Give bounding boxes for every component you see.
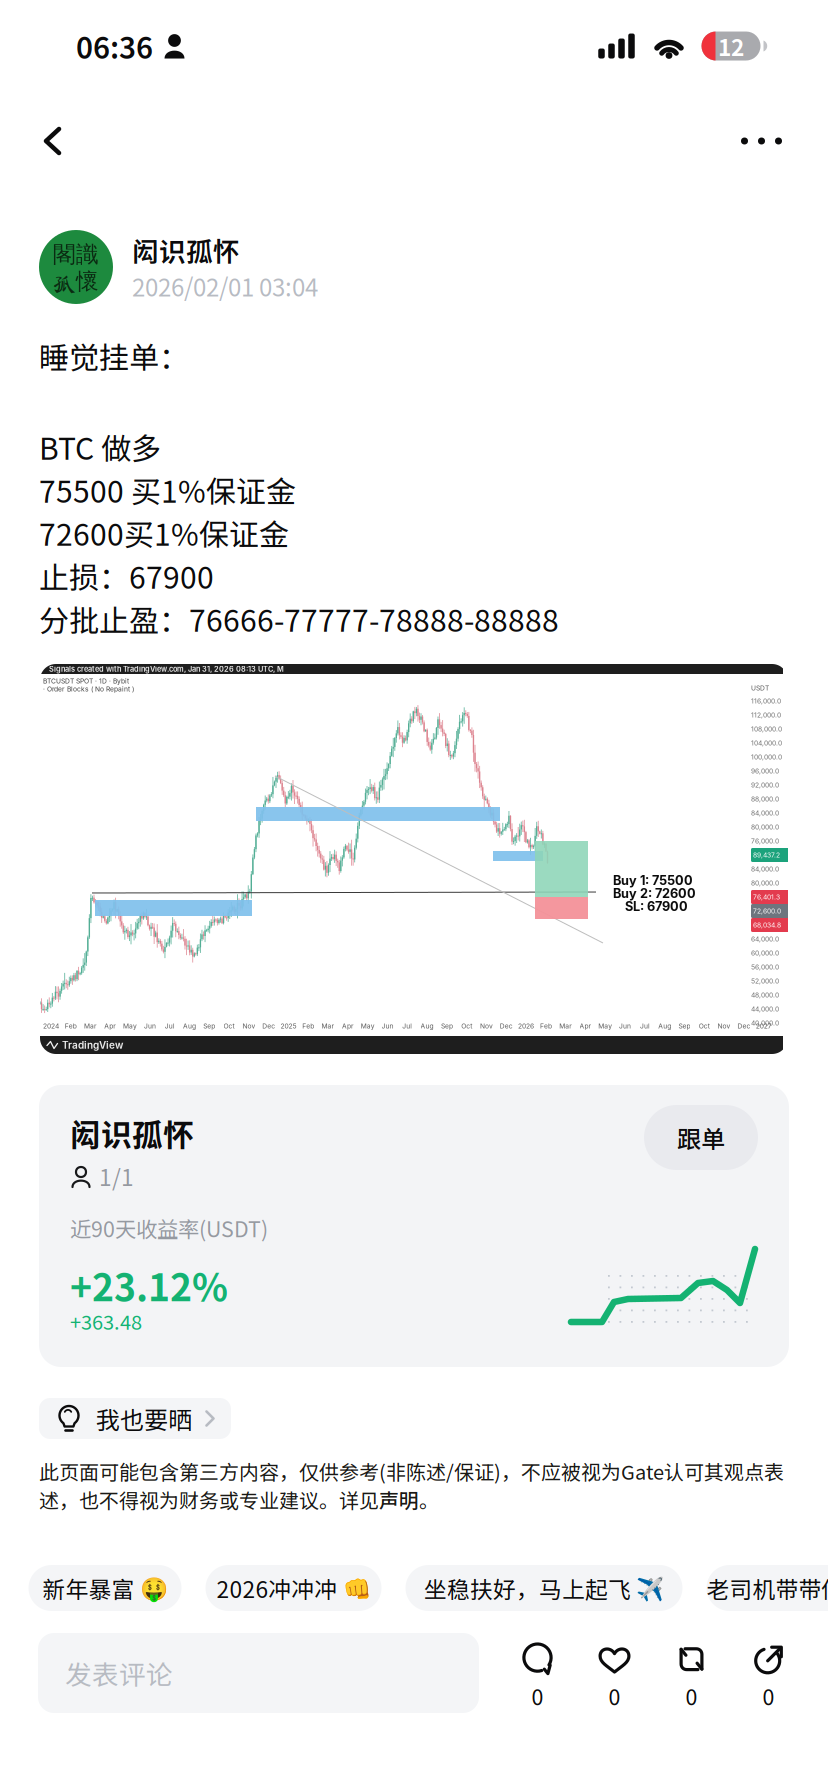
staticText: Oct — [699, 1022, 710, 1030]
staticText: 1/1 — [99, 1160, 134, 1192]
staticText: 2027 — [756, 1022, 772, 1030]
button[interactable]: 2026冲冲冲 👊 — [205, 1565, 381, 1611]
staticText: Apr — [342, 1022, 354, 1030]
staticText: 44,000.0 — [751, 1005, 779, 1013]
staticText: 76,401.3 — [753, 893, 780, 901]
staticText: Feb — [540, 1022, 552, 1030]
staticText: 跟单 — [677, 1120, 725, 1155]
staticText: +23.12% — [70, 1258, 228, 1312]
staticText: 我也要晒 — [96, 1401, 192, 1436]
staticText: 75500 买1%保证金 — [39, 468, 296, 511]
staticText: Nov — [480, 1022, 493, 1030]
staticText: +363.48 — [70, 1306, 142, 1335]
button[interactable]: Like — [576, 1633, 653, 1713]
staticText: Jul — [640, 1022, 650, 1030]
staticText: BTCUSDT SPOT · 1D · Bybit — [43, 677, 129, 685]
staticText: 72,600.0 — [753, 907, 781, 915]
staticText: May — [598, 1022, 612, 1030]
staticText: Nov — [718, 1022, 731, 1030]
staticText: 近90天收益率(USDT) — [70, 1213, 268, 1243]
staticText: Sep — [203, 1022, 215, 1030]
staticText: Apr — [579, 1022, 591, 1030]
staticText: Mar — [84, 1022, 97, 1030]
staticText: · Order Blocks ( No Repaint ) — [43, 685, 134, 693]
button[interactable]: 发表评论 — [38, 1633, 479, 1713]
staticText: 112,000.0 — [751, 711, 781, 719]
button[interactable]: Repost — [653, 1633, 730, 1713]
staticText: 64,000.0 — [751, 935, 779, 943]
staticText: Jun — [381, 1022, 393, 1030]
staticText: SL: 67900 — [625, 899, 688, 914]
staticText: 108,000.0 — [751, 725, 782, 733]
staticText: 睡觉挂单： — [39, 334, 189, 377]
staticText: Mar — [322, 1022, 335, 1030]
staticText: 0 — [762, 1681, 774, 1711]
staticText: USDT — [751, 684, 769, 692]
staticText: TradingView — [62, 1039, 123, 1051]
staticText: Oct — [224, 1022, 235, 1030]
staticText: Buy 2: 72600 — [613, 886, 696, 901]
staticText: 56,000.0 — [751, 963, 779, 971]
staticText: 发表评论 — [65, 1654, 173, 1692]
staticText: 100,000.0 — [751, 753, 782, 761]
staticText: 84,000.0 — [751, 809, 779, 817]
staticText: 2024 — [43, 1022, 59, 1030]
staticText: 80,000.0 — [751, 823, 779, 831]
staticText: 68,034.8 — [753, 921, 781, 929]
staticText: 84,000.0 — [751, 865, 779, 873]
staticText: Jul — [402, 1022, 412, 1030]
staticText: Dec — [500, 1022, 513, 1030]
staticText: Feb — [302, 1022, 314, 1030]
staticText: 80,000.0 — [751, 879, 779, 887]
staticText: 閣識 — [53, 240, 99, 269]
staticText: Sep — [441, 1022, 453, 1030]
staticText: 2026冲冲冲 👊 — [216, 1572, 370, 1604]
staticText: 72600买1%保证金 — [39, 511, 289, 554]
staticText: Aug — [183, 1022, 196, 1030]
staticText: Jul — [165, 1022, 175, 1030]
staticText: Aug — [658, 1022, 671, 1030]
button[interactable]: 新年暴富 🤑 — [28, 1565, 181, 1611]
staticText: 0 — [685, 1681, 697, 1711]
staticText: Nov — [242, 1022, 255, 1030]
staticText: 孤懷 — [53, 267, 99, 296]
staticText: 分批止盈：76666-77777-78888-88888 — [39, 597, 559, 640]
button[interactable]: 老司机带带你 🚗 — [706, 1565, 828, 1611]
staticText: BTC 做多 — [39, 425, 161, 468]
staticText: 坐稳扶好，马上起飞 ✈️ — [424, 1572, 664, 1604]
staticText: 52,000.0 — [751, 977, 779, 985]
button[interactable]: Share — [730, 1633, 807, 1713]
button[interactable]: 坐稳扶好，马上起飞 ✈️ — [405, 1565, 682, 1611]
staticText: Dec — [262, 1022, 275, 1030]
staticText: 12 — [718, 30, 744, 62]
staticText: 104,000.0 — [751, 739, 782, 747]
staticText: Jun — [144, 1022, 156, 1030]
staticText: 老司机带带你 🚗 — [706, 1572, 828, 1604]
button[interactable]: Author avatar — [39, 230, 113, 304]
staticText: Sep — [678, 1022, 690, 1030]
button[interactable]: Comment — [499, 1633, 576, 1713]
staticText: 76,000.0 — [751, 837, 779, 845]
staticText: May — [123, 1022, 137, 1030]
staticText: 2026 — [518, 1022, 534, 1030]
button[interactable]: More options — [715, 92, 808, 189]
staticText: Aug — [421, 1022, 434, 1030]
button[interactable]: Back — [19, 92, 86, 190]
staticText: 止损：67900 — [39, 554, 214, 597]
staticText: 89,437.2 — [753, 851, 780, 859]
staticText: Apr — [104, 1022, 116, 1030]
button[interactable]: 跟单 — [644, 1105, 758, 1170]
staticText: 60,000.0 — [751, 949, 779, 957]
staticText: May — [361, 1022, 375, 1030]
staticText: 此页面可能包含第三方内容，仅供参考(非陈述/保证)，不应被视为Gate认可其观点… — [39, 1457, 784, 1514]
staticText: 116,000.0 — [751, 697, 781, 705]
button[interactable]: 我也要晒 — [39, 1398, 231, 1439]
staticText: Oct — [461, 1022, 472, 1030]
staticText: 48,000.0 — [751, 991, 779, 999]
staticText: Signals created with TradingView.com, Ja… — [49, 665, 284, 673]
staticText: 闳识孤怀 — [70, 1111, 194, 1155]
staticText: 88,000.0 — [751, 795, 779, 803]
staticText: 96,000.0 — [751, 767, 779, 775]
staticText: 40,000.0 — [751, 1019, 779, 1027]
staticText: 92,000.0 — [751, 781, 779, 789]
